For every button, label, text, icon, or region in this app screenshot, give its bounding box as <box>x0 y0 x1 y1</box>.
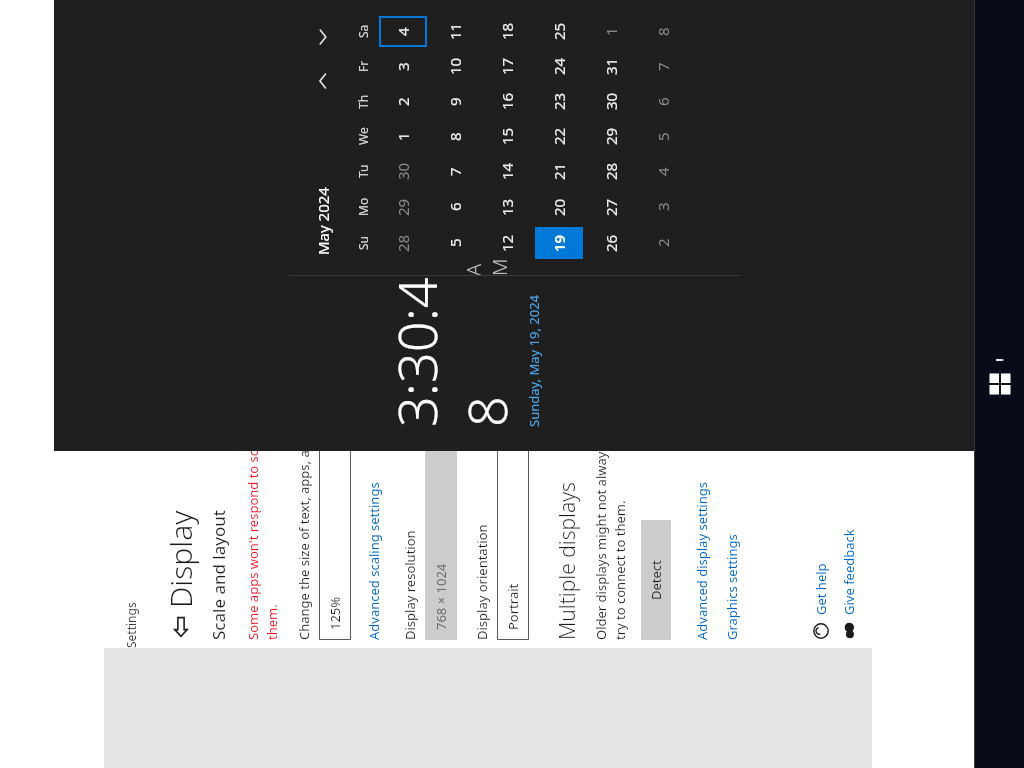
button[interactable]: 22 <box>535 121 583 152</box>
staticText: Display <box>160 510 201 608</box>
button[interactable]: 27 <box>587 191 635 223</box>
button[interactable]: May 2024 <box>313 187 333 255</box>
button[interactable]: Previous month <box>306 64 340 98</box>
button[interactable]: 17 <box>483 51 531 82</box>
staticText: 8 <box>445 132 465 141</box>
button[interactable]: 12 <box>483 227 531 259</box>
button[interactable]: 18 <box>483 16 531 47</box>
button[interactable]: 21 <box>535 156 583 187</box>
staticText: Portrait <box>504 583 522 630</box>
staticText: 26 <box>601 234 621 252</box>
button[interactable]: 5 <box>639 121 687 152</box>
staticText: 9 <box>445 97 465 106</box>
staticText: 1 <box>393 132 413 141</box>
staticText: 31 <box>601 57 621 75</box>
staticText: 19 <box>549 234 569 252</box>
staticText: 7 <box>445 167 465 176</box>
button[interactable]: Advanced display settings <box>693 482 711 640</box>
button[interactable]: Get help <box>812 563 830 640</box>
button[interactable]: 1 <box>379 121 427 152</box>
button[interactable]: 6 <box>639 86 687 117</box>
button[interactable]: 28 <box>587 156 635 187</box>
button[interactable]: 768 × 1024 <box>425 310 457 640</box>
staticText: Change the size of text, apps, and other… <box>295 360 313 640</box>
button[interactable]: 3 <box>379 51 427 82</box>
staticText: 28 <box>601 162 621 180</box>
staticText: 16 <box>497 92 517 110</box>
staticText: 5 <box>445 238 465 247</box>
staticText: 4 <box>653 167 673 176</box>
button[interactable]: 4 <box>379 16 427 47</box>
button[interactable]: Next month <box>306 20 340 54</box>
button[interactable]: 7 <box>431 156 479 187</box>
staticText: 8 <box>653 27 673 36</box>
staticText: Some apps won't respond to scaling chang… <box>244 274 281 640</box>
button[interactable]: Portrait <box>497 310 529 640</box>
button[interactable]: Detect <box>641 520 671 640</box>
button[interactable]: 20 <box>535 191 583 223</box>
button[interactable]: Graphics settings <box>723 534 741 640</box>
staticText: 12 <box>497 234 517 252</box>
staticText: 10 <box>445 57 465 75</box>
staticText: Multiple displays <box>553 482 582 640</box>
button[interactable]: 30 <box>587 86 635 117</box>
button[interactable]: 4 <box>639 156 687 187</box>
staticText: 2 <box>393 97 413 106</box>
button[interactable]: 30 <box>379 156 427 187</box>
staticText: Older displays might not always connect … <box>592 206 629 640</box>
button[interactable]: Display <box>160 510 201 640</box>
staticText: 14 <box>497 162 517 180</box>
staticText: Fr <box>355 60 371 72</box>
button[interactable]: 19 <box>535 227 583 259</box>
button[interactable]: 26 <box>587 227 635 259</box>
button[interactable]: 23 <box>535 86 583 117</box>
staticText: We <box>355 127 371 145</box>
button[interactable]: 31 <box>587 51 635 82</box>
button[interactable]: Advanced scaling settings <box>365 482 383 640</box>
button[interactable]: 14 <box>483 156 531 187</box>
staticText: 5 <box>653 132 673 141</box>
button[interactable]: 2 <box>379 86 427 117</box>
button[interactable]: 3 <box>639 191 687 223</box>
staticText: Tu <box>355 164 371 178</box>
staticText: Sunday, May 19, 2024 <box>525 294 543 427</box>
staticText: 3 <box>393 62 413 71</box>
button[interactable]: 13 <box>483 191 531 223</box>
button[interactable]: 125% <box>319 310 351 640</box>
button[interactable]: 2 <box>639 227 687 259</box>
button[interactable]: 9 <box>431 86 479 117</box>
button[interactable]: 7 <box>639 51 687 82</box>
staticText: Su <box>355 235 371 250</box>
staticText: 125% <box>326 596 344 630</box>
staticText: 1 <box>601 27 621 36</box>
staticText: Get help <box>812 563 830 615</box>
staticText: 28 <box>393 234 413 252</box>
staticText: 22 <box>549 127 569 145</box>
button[interactable]: 25 <box>535 16 583 47</box>
button[interactable]: 29 <box>379 191 427 223</box>
button[interactable]: 28 <box>379 227 427 259</box>
staticText: 7 <box>653 62 673 71</box>
button[interactable]: 8 <box>639 16 687 47</box>
button[interactable]: 29 <box>587 121 635 152</box>
button[interactable]: 5 <box>431 227 479 259</box>
button[interactable]: Start <box>975 360 1024 409</box>
button[interactable]: 1 <box>587 16 635 47</box>
button[interactable]: 15 <box>483 121 531 152</box>
staticText: 768 × 1024 <box>432 563 450 630</box>
staticText: 6 <box>445 202 465 211</box>
staticText: 17 <box>497 57 517 75</box>
staticText: Detect <box>647 560 665 600</box>
button[interactable]: 10 <box>431 51 479 82</box>
button[interactable]: 16 <box>483 86 531 117</box>
button[interactable]: 11 <box>431 16 479 47</box>
button[interactable]: 6 <box>431 191 479 223</box>
button[interactable]: Give feedback <box>840 529 858 640</box>
button[interactable]: 8 <box>431 121 479 152</box>
button[interactable]: 24 <box>535 51 583 82</box>
staticText: 4 <box>393 27 413 36</box>
staticText: 21 <box>549 162 569 180</box>
